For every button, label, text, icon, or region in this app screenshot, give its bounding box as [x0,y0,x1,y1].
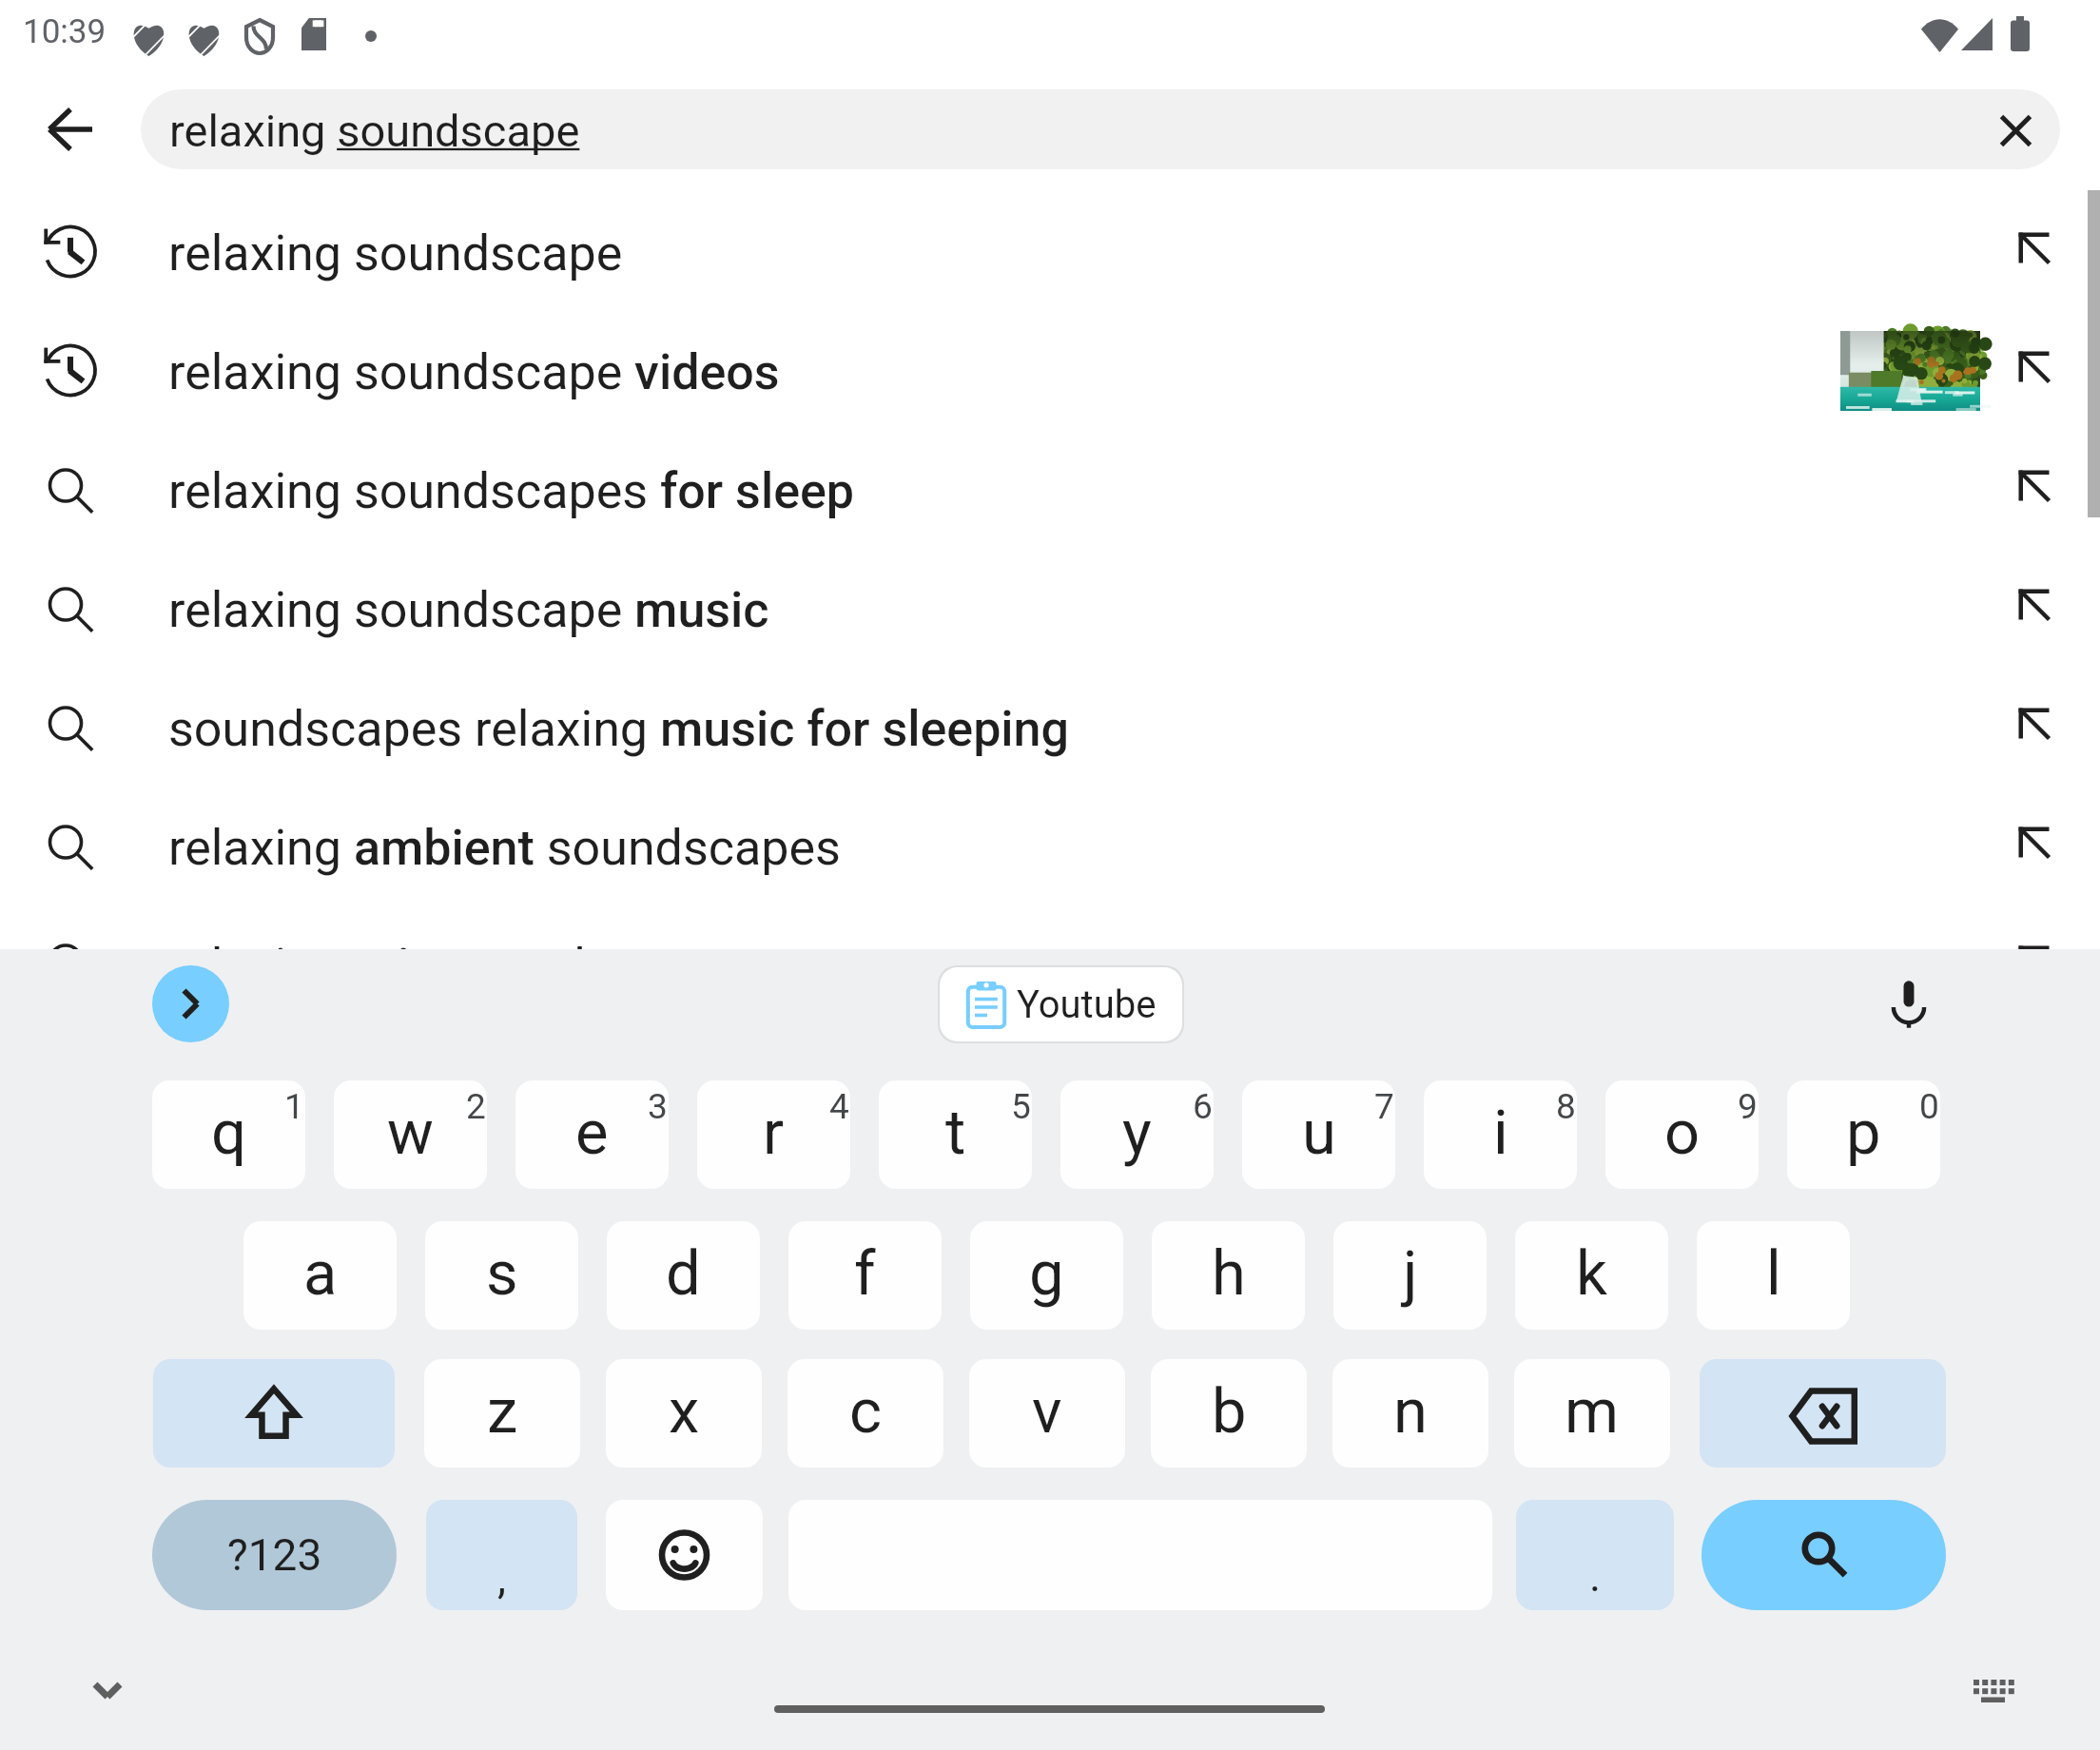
staticText: relaxing rain sounds [168,938,612,996]
staticText: relaxing soundscape [169,105,580,157]
staticText: x [669,1375,700,1448]
button[interactable]: relaxing soundscape videos [0,311,2100,430]
staticText: soundscapes relaxing music for sleeping [168,700,1070,758]
button[interactable]: relaxing soundscape music [0,549,2100,668]
staticText: Youtube [1017,982,1157,1027]
staticText: relaxing soundscape [168,224,623,282]
button[interactable]: p [1787,1080,1940,1189]
button[interactable]: e [515,1080,669,1189]
button[interactable]: soundscapes relaxing music for sleeping [0,668,2100,787]
staticText: b [1212,1375,1247,1448]
staticText: m [1565,1375,1620,1448]
button[interactable]: Hide keyboard [67,1660,148,1722]
button[interactable]: k [1515,1221,1668,1330]
staticText: o [1664,1097,1701,1169]
button[interactable]: , [426,1500,577,1610]
button[interactable]: g [970,1221,1123,1330]
button[interactable]: w [334,1080,487,1189]
staticText: 1 [284,1086,304,1127]
staticText: r [763,1097,785,1169]
staticText: w [387,1097,434,1169]
button[interactable]: relaxing ambient soundscapes [0,787,2100,905]
staticText: h [1212,1237,1246,1310]
button[interactable]: d [607,1221,760,1330]
staticText: 6 [1193,1086,1213,1127]
staticText: n [1393,1375,1428,1448]
button[interactable]: m [1514,1359,1670,1468]
staticText: y [1122,1097,1152,1169]
button[interactable]: h [1152,1221,1305,1330]
button[interactable]: Shift [153,1359,395,1468]
button[interactable]: relaxing rain sounds [0,905,2100,1024]
button[interactable]: Switch keyboard [1959,1660,2028,1722]
staticText: j [1403,1237,1418,1310]
button[interactable]: q [152,1080,305,1189]
button[interactable]: relaxing soundscape [0,192,2100,311]
staticText: a [303,1237,338,1310]
staticText: . [1589,1550,1602,1602]
staticText: t [945,1097,966,1169]
button[interactable]: s [425,1221,578,1330]
button[interactable]: j [1333,1221,1487,1330]
staticText: 0 [1919,1086,1939,1127]
staticText: 5 [1011,1086,1031,1127]
staticText: e [575,1097,609,1169]
staticText: 2 [466,1086,486,1127]
button[interactable]: l [1697,1221,1850,1330]
staticText: 10:39 [23,12,107,51]
button[interactable]: u [1242,1080,1395,1189]
staticText: c [849,1375,883,1448]
button[interactable]: r [697,1080,850,1189]
staticText: , [497,1552,507,1604]
button[interactable]: a [243,1221,397,1330]
staticText: 3 [648,1086,668,1127]
staticText: p [1846,1097,1881,1169]
button[interactable]: Back [10,89,133,169]
staticText: z [487,1375,518,1448]
button[interactable]: relaxing soundscape [141,89,2060,169]
staticText: g [1029,1237,1064,1310]
button[interactable]: Expand [152,965,229,1042]
button[interactable]: i [1424,1080,1577,1189]
button[interactable]: relaxing soundscapes for sleep [0,430,2100,549]
button[interactable]: Clear [1973,89,2052,169]
button[interactable]: z [424,1359,580,1468]
button[interactable]: o [1605,1080,1759,1189]
staticText: i [1493,1097,1508,1169]
button[interactable]: Backspace [1700,1359,1946,1468]
button[interactable]: n [1332,1359,1488,1468]
button[interactable]: b [1151,1359,1307,1468]
staticText: 8 [1556,1086,1576,1127]
staticText: 4 [829,1086,849,1127]
staticText: ?123 [227,1529,322,1581]
button[interactable]: Search [1701,1500,1946,1610]
staticText: relaxing soundscape videos [168,343,780,401]
button[interactable]: Youtube [940,967,1182,1041]
button[interactable]: Emoji [606,1500,763,1610]
button[interactable]: t [879,1080,1032,1189]
button[interactable]: v [969,1359,1125,1468]
button[interactable]: . [1516,1500,1674,1610]
staticText: relaxing soundscape music [168,581,769,639]
button[interactable]: f [788,1221,942,1330]
staticText: u [1302,1097,1336,1169]
staticText: k [1576,1237,1607,1310]
staticText: 7 [1374,1086,1394,1127]
button[interactable]: c [787,1359,943,1468]
button[interactable]: Voice input [1871,966,1947,1042]
staticText: l [1766,1237,1781,1310]
staticText: 9 [1738,1086,1758,1127]
staticText: v [1032,1375,1062,1448]
staticText: f [854,1237,876,1310]
button[interactable]: ?123 [152,1500,397,1610]
button[interactable]: y [1060,1080,1214,1189]
staticText: d [666,1237,701,1310]
button[interactable]: x [606,1359,762,1468]
staticText: s [486,1237,518,1310]
staticText: relaxing soundscapes for sleep [168,462,855,520]
staticText: relaxing ambient soundscapes [168,819,841,877]
staticText: q [211,1097,246,1169]
